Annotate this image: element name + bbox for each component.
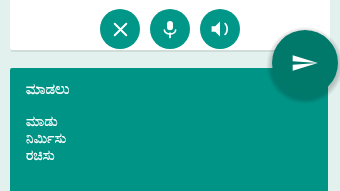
button[interactable]: Listen — [200, 9, 240, 49]
staticText: ರಚಿಸು — [26, 149, 55, 163]
button[interactable]: Close — [100, 9, 140, 49]
button[interactable]: Voice input — [150, 9, 190, 49]
staticText: ಮಾಡಲು — [26, 82, 70, 97]
staticText: ಮಾಡು — [26, 115, 58, 129]
staticText: ನಿರ್ಮಿಸು — [26, 132, 67, 146]
button[interactable]: ಮಾಡಲು — [10, 68, 328, 191]
button[interactable]: Send — [272, 30, 338, 96]
